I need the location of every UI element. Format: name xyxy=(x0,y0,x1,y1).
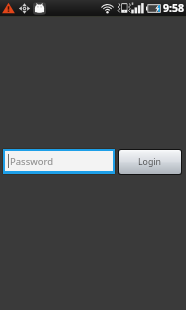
staticText: 9:58 xyxy=(163,1,184,15)
staticText: Password xyxy=(10,155,53,168)
other: Wi-Fi xyxy=(102,3,113,14)
other: Vibrate xyxy=(117,2,131,14)
other: Mobile signal xyxy=(131,2,143,14)
other: Battery charging xyxy=(146,4,161,13)
other: USB debugging xyxy=(33,2,46,15)
button[interactable]: Password xyxy=(5,151,113,171)
staticText: Login xyxy=(138,156,162,168)
other: Move xyxy=(18,2,31,15)
other: Warning xyxy=(2,2,15,15)
button[interactable]: Login xyxy=(119,150,181,174)
